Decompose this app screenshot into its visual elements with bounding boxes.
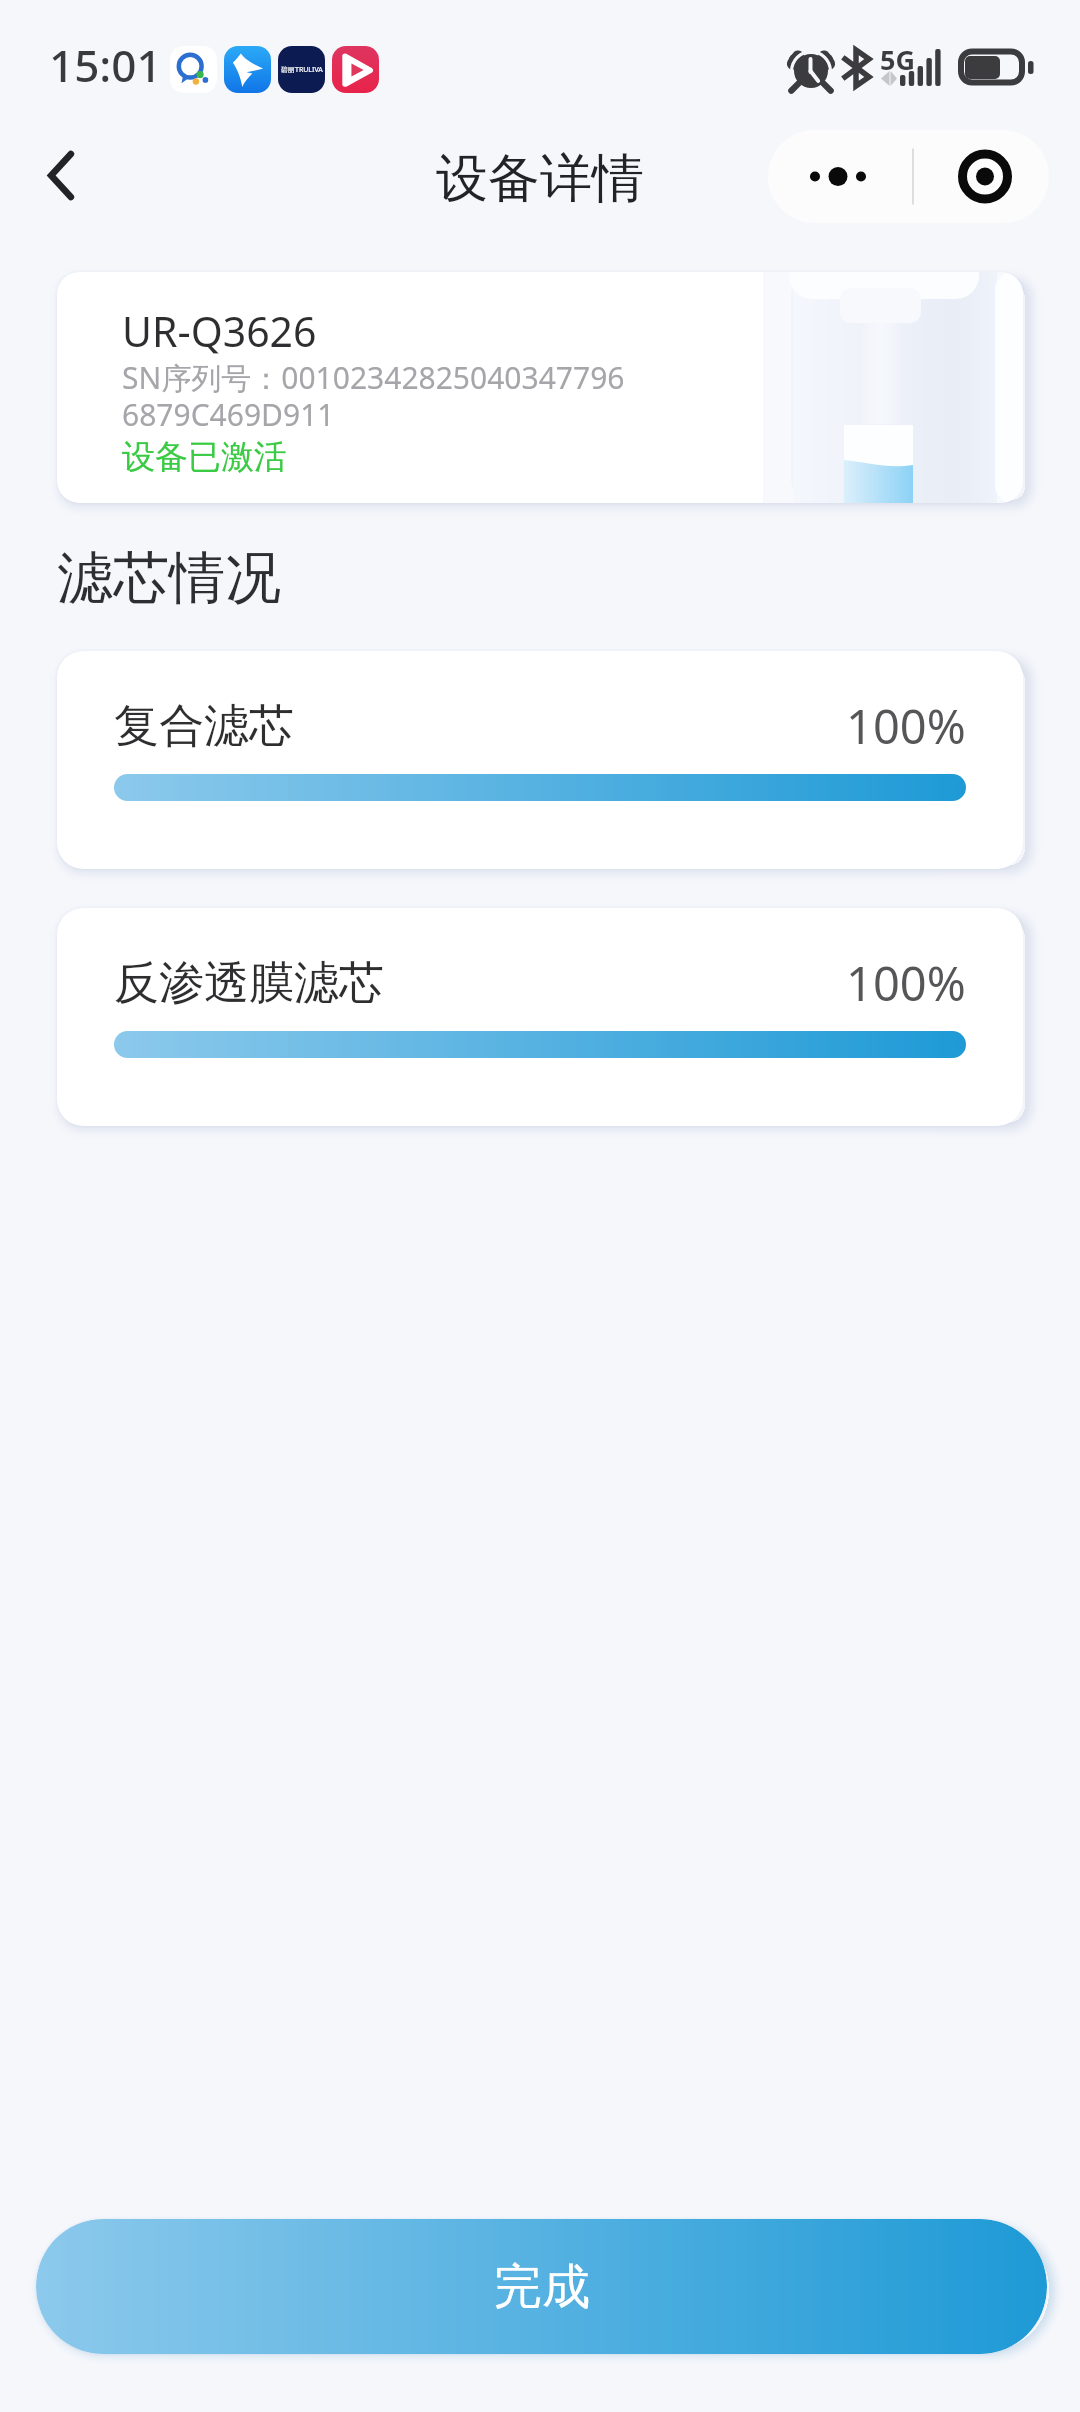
staticText: 15:01 [49, 35, 162, 95]
button[interactable]: 反渗透膜滤芯 [57, 908, 1023, 1126]
staticText: 100% [846, 694, 966, 758]
staticText: 5G [880, 41, 915, 78]
button[interactable]: More options [768, 130, 1049, 223]
staticText: 复合滤芯 [114, 698, 294, 755]
button[interactable]: Back [11, 125, 111, 225]
staticText: 滤芯情况 [57, 543, 281, 614]
button[interactable]: 复合滤芯 [57, 651, 1023, 869]
staticText: UR-Q3626 [122, 303, 317, 359]
button[interactable]: 完成 [36, 2219, 1047, 2354]
staticText: 反渗透膜滤芯 [114, 955, 384, 1012]
staticText: 完成 [494, 2257, 590, 2317]
button[interactable]: UR-Q3626 [57, 272, 1023, 503]
staticText: SN序列号：00102342825040347796 6879C469D911 [122, 357, 625, 435]
staticText: 100% [846, 951, 966, 1015]
staticText: 设备详情 [436, 146, 644, 212]
staticText: 碧丽TRULIVA [281, 65, 323, 75]
staticText: 设备已激活 [122, 436, 287, 478]
